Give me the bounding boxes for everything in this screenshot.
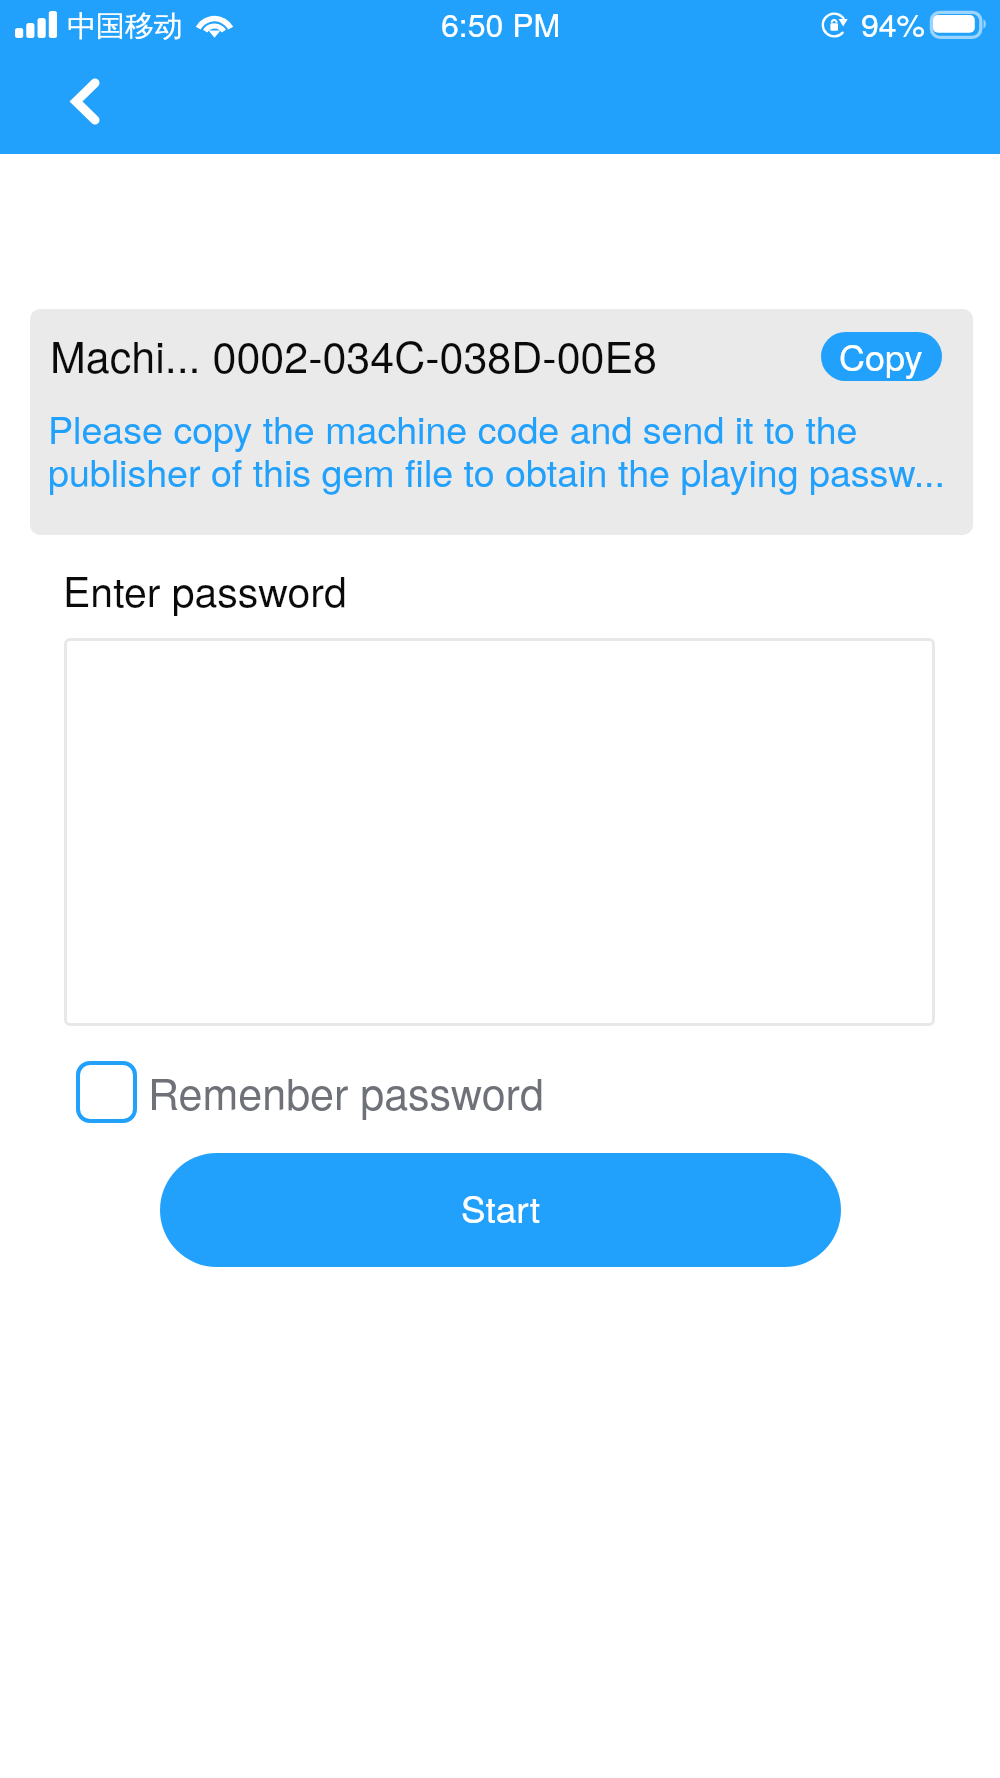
- staticText: Enter password: [63, 560, 347, 619]
- staticText: Copy: [839, 332, 923, 379]
- button[interactable]: Password field: [64, 638, 935, 1026]
- button[interactable]: Remenber password: [76, 1061, 544, 1123]
- button[interactable]: Back: [46, 62, 124, 140]
- staticText: Remenber password: [148, 1061, 544, 1123]
- button[interactable]: Start: [160, 1153, 841, 1267]
- staticText: Start: [461, 1181, 541, 1234]
- staticText: 6:50 PM: [441, 0, 561, 46]
- staticText: 中国移动: [67, 8, 183, 45]
- button[interactable]: Copy: [821, 332, 942, 381]
- staticText: Please copy the machine code and send it…: [48, 401, 963, 498]
- staticText: Machi... 0002-034C-038D-00E8: [50, 324, 658, 386]
- staticText: 94%: [861, 0, 926, 46]
